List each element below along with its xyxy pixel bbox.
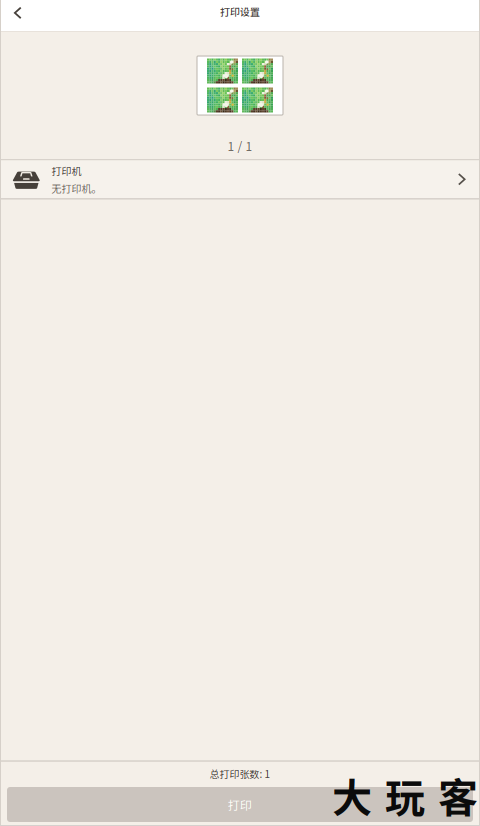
staticText: 大玩客: [332, 766, 478, 824]
staticText: 总打印张数: 1: [209, 766, 270, 781]
staticText: 打印: [228, 796, 252, 813]
staticText: 打印机: [52, 163, 82, 178]
button[interactable]: 返回: [0, 0, 34, 26]
button[interactable]: 打印: [7, 787, 473, 822]
staticText: 打印设置: [220, 4, 260, 19]
button[interactable]: 打印机: [0, 160, 480, 198]
staticText: 无打印机。: [52, 181, 102, 195]
staticText: 1 / 1: [227, 137, 252, 154]
